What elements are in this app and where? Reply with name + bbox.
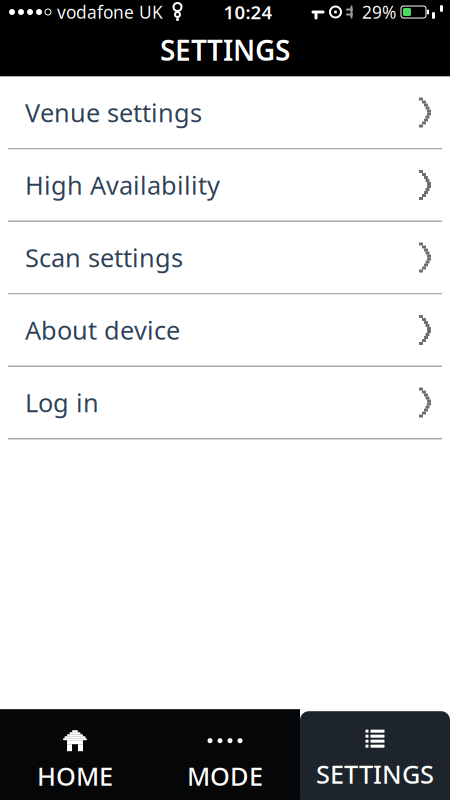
staticText: About device — [25, 313, 180, 347]
staticText: MODE — [187, 759, 263, 793]
button[interactable]: SETTINGS — [300, 711, 450, 800]
button[interactable]: Scan settings — [0, 222, 450, 294]
button[interactable]: Venue settings — [0, 77, 450, 149]
button[interactable]: About device — [0, 294, 450, 367]
staticText: High Availability — [25, 168, 220, 202]
staticText: SETTINGS — [316, 757, 434, 791]
staticText: Log in — [25, 386, 99, 419]
staticText: Venue settings — [25, 96, 202, 129]
button[interactable]: High Availability — [0, 149, 450, 222]
staticText: Scan settings — [25, 241, 183, 274]
button[interactable]: HOME — [0, 709, 150, 800]
staticText: SETTINGS — [160, 31, 290, 69]
button[interactable]: MODE — [150, 709, 300, 800]
staticText: 10:24 — [223, 0, 272, 24]
button[interactable]: Log in — [0, 367, 450, 439]
staticText: 29% — [362, 0, 396, 23]
staticText: vodafone UK — [57, 0, 163, 23]
staticText: HOME — [37, 759, 113, 793]
